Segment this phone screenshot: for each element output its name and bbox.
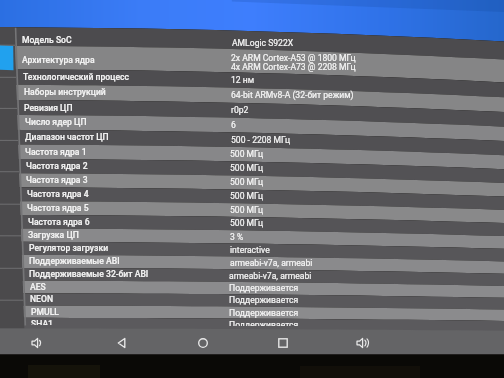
staticText: 3 %	[230, 232, 244, 242]
button[interactable]: Home	[196, 336, 210, 350]
staticText: Поддерживается	[229, 283, 299, 293]
staticText: 2x ARM Cortex-A53 @ 1800 МГц	[231, 53, 356, 63]
staticText: 4x ARM Cortex-A73 @ 2208 МГц	[231, 62, 356, 72]
staticText: Частота ядра 5	[27, 203, 89, 213]
button[interactable]: Volume down	[30, 336, 44, 350]
staticText: 500 МГц	[230, 191, 264, 201]
staticText: Поддерживается	[229, 308, 299, 318]
staticText: Частота ядра 1	[25, 147, 87, 157]
staticText: NEON	[30, 294, 54, 304]
staticText: 500 МГц	[230, 177, 264, 187]
staticText: 500 МГц	[230, 218, 264, 228]
button[interactable]: Volume up	[355, 336, 369, 350]
staticText: AMLogic S922X	[232, 38, 294, 48]
staticText: 500 - 2208 МГц	[231, 135, 291, 145]
staticText: Загрузка ЦП	[28, 230, 79, 240]
staticText: Частота ядра 6	[28, 217, 90, 227]
staticText: 500 МГц	[230, 205, 264, 215]
staticText: Технологический процесс	[23, 72, 129, 82]
staticText: PMULL	[31, 307, 59, 317]
staticText: Архитектура ядра	[22, 55, 95, 65]
staticText: Диапазон частот ЦП	[25, 132, 109, 142]
staticText: Модель SoC	[22, 35, 72, 45]
button[interactable]: Back	[115, 336, 129, 350]
staticText: 500 МГц	[230, 149, 264, 159]
staticText: AES	[30, 282, 46, 292]
staticText: Частота ядра 2	[26, 161, 88, 171]
staticText: r0p2	[231, 105, 249, 115]
staticText: armeabi-v7a, armeabi	[229, 271, 312, 281]
staticText: 500 МГц	[230, 163, 264, 173]
staticText: Ревизия ЦП	[24, 103, 73, 113]
staticText: Регулятор загрузки	[29, 243, 109, 253]
staticText: Наборы инструкций	[24, 87, 106, 97]
button[interactable]: Recent apps	[276, 336, 290, 350]
staticText: 12 нм	[231, 75, 255, 85]
staticText: Число ядер ЦП	[25, 117, 87, 127]
staticText: Частота ядра 3	[26, 175, 88, 185]
staticText: Поддерживаемые 32-бит ABI	[29, 269, 149, 279]
staticText: Частота ядра 4	[27, 189, 89, 199]
staticText: Поддерживается	[229, 320, 299, 326]
staticText: Поддерживается	[229, 295, 299, 305]
staticText: SHA1	[31, 319, 53, 325]
staticText: 64-bit ARMv8-A (32-бит режим)	[231, 90, 354, 100]
staticText: interactive	[230, 245, 270, 255]
staticText: 6	[231, 120, 236, 130]
staticText: Поддерживаемые ABI	[29, 256, 120, 266]
staticText: armeabi-v7a, armeabi	[230, 258, 313, 268]
